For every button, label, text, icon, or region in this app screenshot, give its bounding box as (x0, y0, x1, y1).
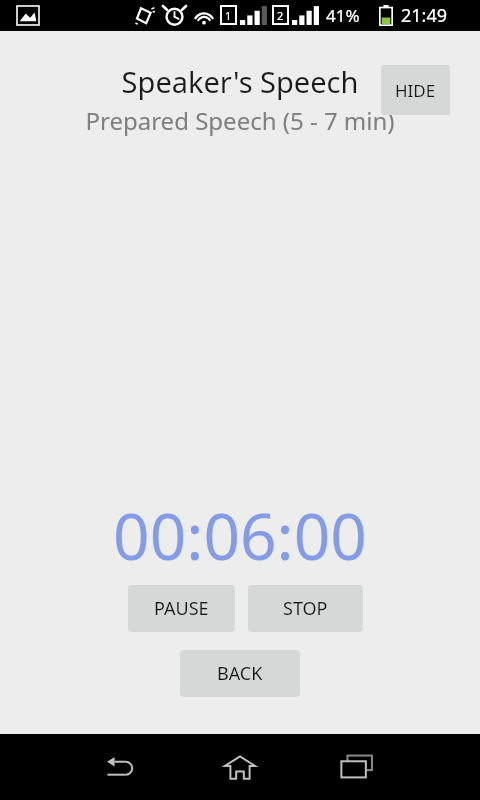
staticText: 21:49 (401, 3, 448, 28)
staticText: HIDE (395, 79, 436, 102)
staticText: STOP (283, 596, 328, 621)
staticText: PAUSE (154, 596, 209, 621)
staticText: 1 (225, 8, 232, 23)
staticText: 00:06:00 (0, 492, 480, 579)
staticText: BACK (217, 661, 263, 686)
button[interactable]: Recent apps (317, 734, 397, 800)
button[interactable]: Home (200, 734, 280, 800)
button[interactable]: PAUSE (128, 585, 235, 632)
staticText: 2 (277, 8, 284, 23)
button[interactable]: Back (80, 734, 160, 800)
staticText: Speaker's Speech (0, 62, 480, 101)
button[interactable]: HIDE (381, 65, 450, 115)
staticText: Prepared Speech (5 - 7 min) (0, 104, 480, 137)
staticText: 41% (326, 4, 360, 27)
button[interactable]: BACK (180, 650, 300, 697)
button[interactable]: STOP (248, 585, 363, 632)
